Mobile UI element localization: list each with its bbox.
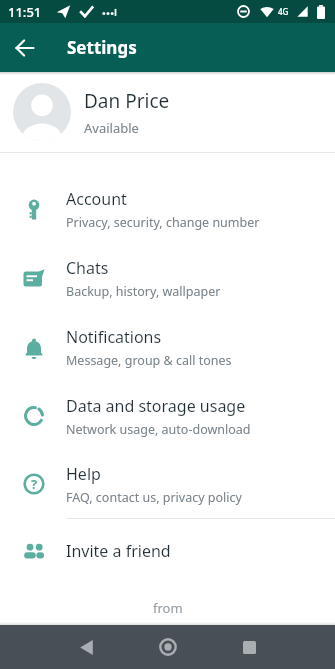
staticText: Chats [66,257,109,279]
staticText: Account [66,188,127,210]
button[interactable] [16,39,34,57]
staticText: Available [84,119,139,137]
staticText: 11:51 [8,3,42,21]
staticText: FAQ, contact us, privacy policy [66,489,242,506]
staticText: from [153,599,183,617]
button[interactable]: Data and storage usage [0,382,335,450]
button[interactable]: Account [0,175,335,244]
button[interactable]: Dan Price [0,72,335,152]
button[interactable]: Chats [0,244,335,313]
button[interactable] [233,631,265,663]
staticText: Privacy, security, change number [66,214,260,231]
button[interactable]: Invite a friend [0,519,335,583]
staticText: Network usage, auto-download [66,421,251,438]
staticText: Backup, history, wallpaper [66,283,221,300]
staticText: Help [66,463,101,485]
button[interactable]: ? [0,450,335,518]
button[interactable] [152,631,184,663]
staticText: 4G [278,6,289,17]
staticText: Dan Price [84,88,170,114]
staticText: Notifications [66,326,162,348]
staticText: Message, group & call tones [66,352,232,369]
staticText: Settings [67,36,137,59]
button[interactable] [70,631,102,663]
staticText: ? [31,475,38,493]
staticText: Data and storage usage [66,395,246,417]
button[interactable]: Notifications [0,313,335,382]
staticText: Invite a friend [66,540,171,562]
